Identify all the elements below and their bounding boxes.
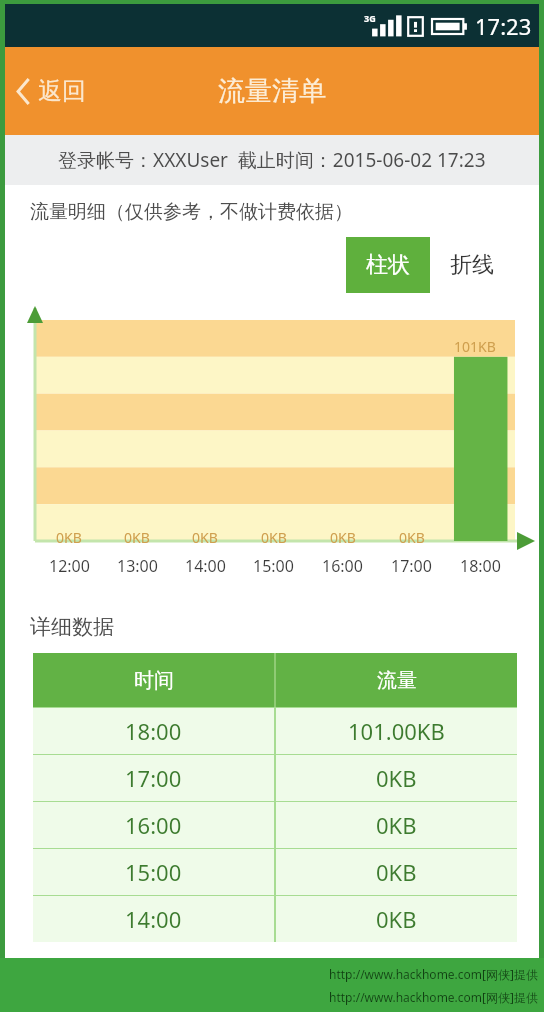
staticText: 16:00 <box>322 555 363 577</box>
staticText: 0KB <box>192 528 218 547</box>
staticText: 101.00KB <box>348 716 445 746</box>
staticText: 0KB <box>56 528 82 547</box>
staticText: 12:00 <box>49 555 90 577</box>
staticText: 18:00 <box>460 555 501 577</box>
staticText: 0KB <box>124 528 150 547</box>
staticText: 17:00 <box>391 555 432 577</box>
staticText: 3G <box>364 12 376 24</box>
button[interactable]: 15:00 <box>33 849 517 895</box>
staticText: 14:00 <box>125 904 182 934</box>
button[interactable]: 17:00 <box>33 755 517 801</box>
staticText: 时间 <box>134 668 174 693</box>
staticText: 101KB <box>454 337 496 356</box>
staticText: 0KB <box>376 763 417 793</box>
button[interactable]: 折线 <box>430 237 514 293</box>
staticText: 流量 <box>377 668 417 693</box>
staticText: 16:00 <box>125 810 182 840</box>
staticText: http://www.hackhome.com[网侠]提供 <box>329 966 538 982</box>
staticText: 17:23 <box>475 11 532 41</box>
staticText: 0KB <box>399 528 425 547</box>
button[interactable]: 柱状 <box>346 237 430 293</box>
staticText: 流量明细（仅供参考，不做计费依据） <box>30 200 353 224</box>
staticText: 0KB <box>376 810 417 840</box>
staticText: 13:00 <box>117 555 158 577</box>
staticText: 14:00 <box>185 555 226 577</box>
button[interactable]: 16:00 <box>33 802 517 848</box>
staticText: 17:00 <box>125 763 182 793</box>
staticText: 登录帐号：XXXUser 截止时间：2015-06-02 17:23 <box>58 147 486 173</box>
staticText: 0KB <box>330 528 356 547</box>
staticText: 详细数据 <box>30 614 114 640</box>
staticText: http://www.hackhome.com[网侠]提供 <box>329 989 538 1005</box>
staticText: 18:00 <box>125 716 182 746</box>
button[interactable]: 14:00 <box>33 896 517 942</box>
staticText: 流量清单 <box>218 74 326 108</box>
staticText: 0KB <box>376 904 417 934</box>
staticText: 0KB <box>261 528 287 547</box>
staticText: 15:00 <box>253 555 294 577</box>
button[interactable]: 返回 <box>5 66 102 116</box>
staticText: 柱状 <box>366 251 410 279</box>
button[interactable]: 18:00 <box>33 708 517 754</box>
staticText: 返回 <box>38 76 86 106</box>
staticText: 15:00 <box>125 857 182 887</box>
staticText: 折线 <box>450 251 494 279</box>
staticText: 0KB <box>376 857 417 887</box>
